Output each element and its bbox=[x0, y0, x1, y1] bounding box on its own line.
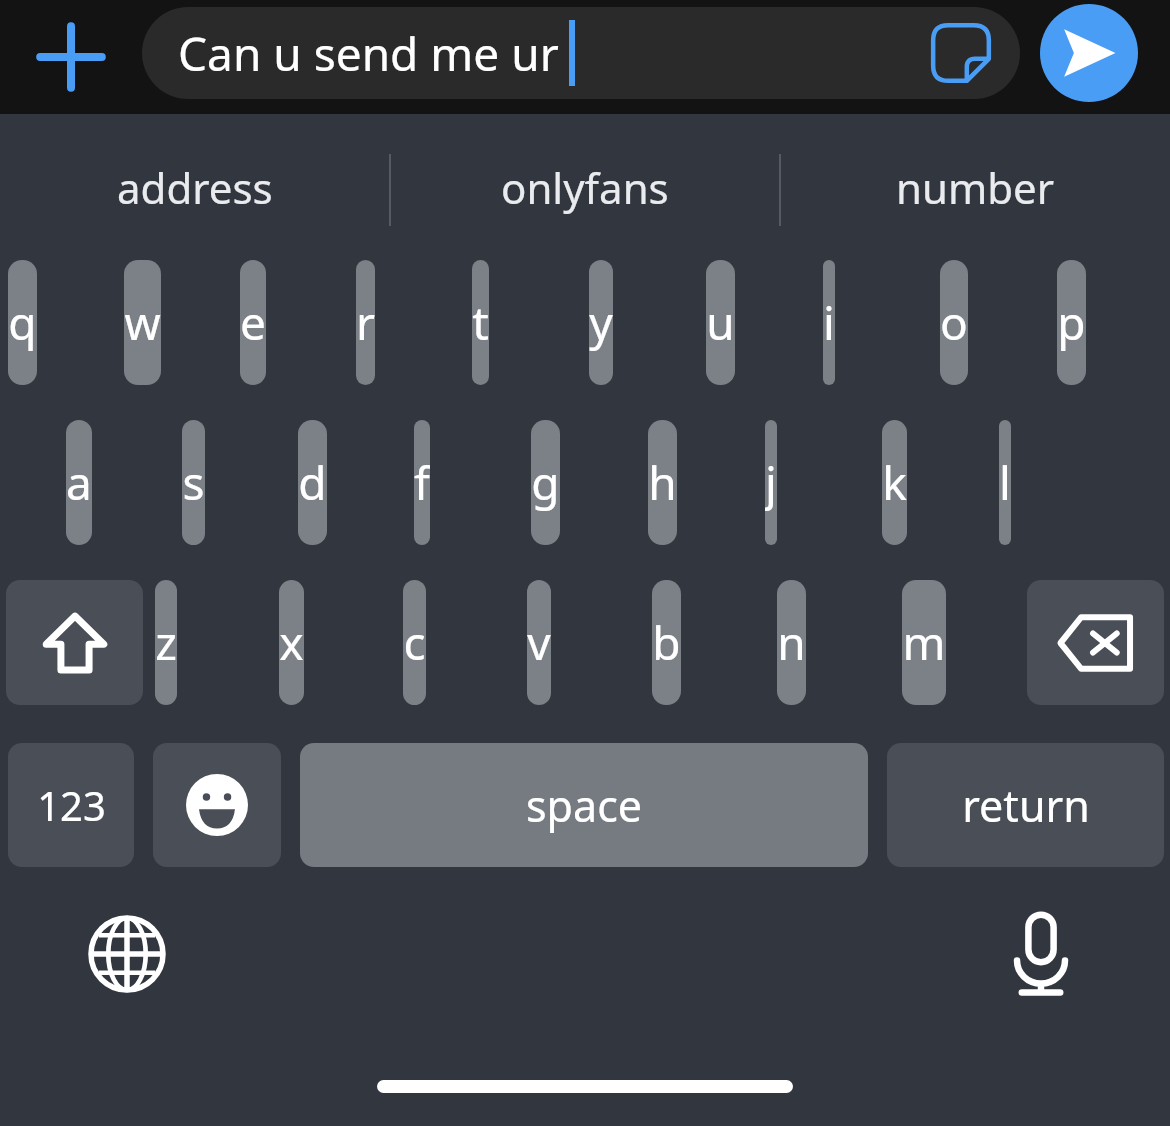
staticText: p bbox=[1057, 291, 1086, 354]
button[interactable]: u bbox=[706, 260, 735, 385]
button[interactable]: return bbox=[887, 743, 1164, 867]
button[interactable]: a bbox=[66, 420, 92, 545]
button[interactable]: o bbox=[940, 260, 968, 385]
staticText: w bbox=[124, 291, 161, 354]
button[interactable]: Voice input bbox=[986, 899, 1096, 1009]
staticText: number bbox=[896, 159, 1055, 216]
staticText: space bbox=[526, 776, 643, 835]
staticText: j bbox=[765, 451, 777, 514]
button[interactable]: b bbox=[652, 580, 681, 705]
button[interactable]: i bbox=[823, 260, 835, 385]
button[interactable]: Stickers bbox=[924, 16, 998, 90]
staticText: d bbox=[298, 451, 327, 514]
button[interactable]: Can u send me ur bbox=[142, 7, 1020, 99]
staticText: t bbox=[472, 291, 489, 354]
button[interactable]: w bbox=[124, 260, 161, 385]
button[interactable]: Add attachment bbox=[25, 0, 117, 114]
button[interactable]: k bbox=[882, 420, 907, 545]
staticText: n bbox=[777, 611, 806, 674]
button[interactable]: Send bbox=[1040, 4, 1138, 102]
staticText: l bbox=[999, 451, 1011, 514]
button[interactable]: y bbox=[589, 260, 613, 385]
staticText: u bbox=[706, 291, 735, 354]
staticText: z bbox=[155, 611, 177, 674]
staticText: g bbox=[531, 451, 560, 514]
button[interactable]: address bbox=[0, 114, 390, 260]
staticText: h bbox=[648, 451, 677, 514]
staticText: a bbox=[66, 451, 92, 514]
staticText: address bbox=[117, 159, 273, 216]
button[interactable]: p bbox=[1057, 260, 1086, 385]
staticText: Can u send me ur bbox=[178, 22, 559, 85]
button[interactable]: j bbox=[765, 420, 777, 545]
button[interactable]: e bbox=[240, 260, 266, 385]
staticText: 123 bbox=[37, 778, 106, 832]
button[interactable]: n bbox=[777, 580, 806, 705]
button[interactable]: s bbox=[182, 420, 205, 545]
button[interactable]: Shift bbox=[6, 580, 143, 705]
button[interactable]: d bbox=[298, 420, 327, 545]
staticText: return bbox=[962, 776, 1090, 835]
staticText: q bbox=[8, 291, 37, 354]
button[interactable]: Backspace bbox=[1027, 580, 1164, 705]
button[interactable]: 123 bbox=[8, 743, 134, 867]
button[interactable]: number bbox=[780, 114, 1170, 260]
button[interactable]: v bbox=[527, 580, 551, 705]
button[interactable]: f bbox=[414, 420, 430, 545]
staticText: o bbox=[940, 291, 968, 354]
staticText: c bbox=[403, 611, 426, 674]
button[interactable]: m bbox=[902, 580, 946, 705]
button[interactable]: h bbox=[648, 420, 677, 545]
staticText: m bbox=[902, 611, 946, 674]
button[interactable]: onlyfans bbox=[390, 114, 780, 260]
button[interactable]: t bbox=[472, 260, 489, 385]
staticText: y bbox=[589, 291, 613, 354]
staticText: r bbox=[356, 291, 375, 354]
staticText: e bbox=[240, 291, 266, 354]
staticText: f bbox=[414, 451, 430, 514]
staticText: k bbox=[882, 451, 907, 514]
button[interactable]: x bbox=[279, 580, 304, 705]
staticText: x bbox=[279, 611, 304, 674]
staticText: i bbox=[823, 291, 835, 354]
button[interactable]: l bbox=[999, 420, 1011, 545]
button[interactable]: c bbox=[403, 580, 426, 705]
button[interactable]: r bbox=[356, 260, 375, 385]
button[interactable]: Emoji bbox=[153, 743, 281, 867]
staticText: onlyfans bbox=[501, 159, 669, 216]
button[interactable]: z bbox=[155, 580, 177, 705]
button[interactable]: g bbox=[531, 420, 560, 545]
button[interactable]: space bbox=[300, 743, 868, 867]
button[interactable]: Change keyboard language bbox=[72, 899, 182, 1009]
button[interactable]: q bbox=[8, 260, 37, 385]
staticText: v bbox=[527, 611, 551, 674]
staticText: s bbox=[182, 451, 205, 514]
staticText: b bbox=[652, 611, 681, 674]
